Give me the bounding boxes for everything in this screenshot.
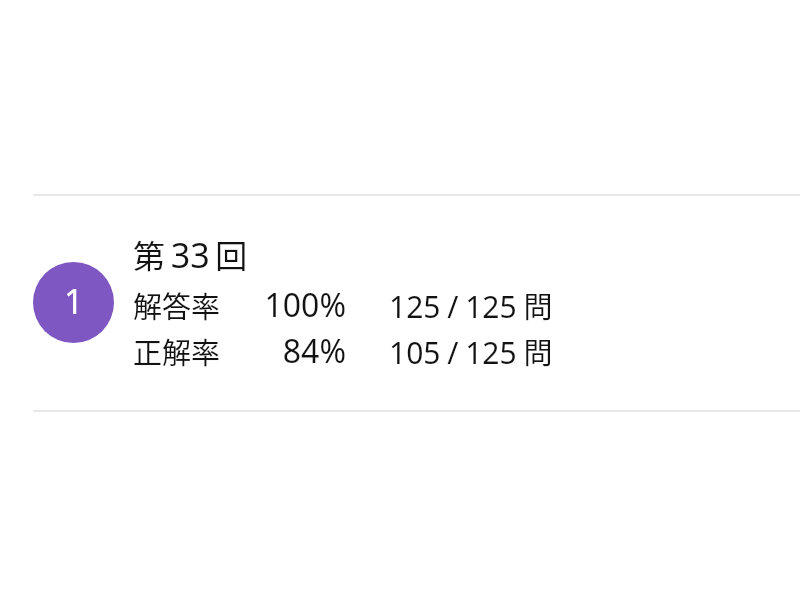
staticText: 解答率	[133, 284, 234, 326]
button[interactable]: Attempt 1	[0, 196, 800, 410]
staticText: 100%	[234, 283, 346, 327]
staticText: 第 33 回	[133, 231, 248, 278]
other: Attempt 1	[33, 262, 114, 343]
staticText: 125 / 125 問	[389, 284, 553, 326]
staticText: 正解率	[133, 330, 234, 372]
staticText: 105 / 125 問	[389, 330, 553, 372]
staticText: 1	[64, 278, 84, 324]
staticText: 84%	[234, 329, 346, 373]
